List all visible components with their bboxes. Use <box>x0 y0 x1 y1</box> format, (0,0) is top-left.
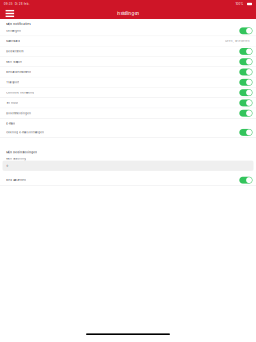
staticText: Instellingen <box>116 11 139 16</box>
button[interactable]: Bloemmeldingen <box>0 108 256 119</box>
staticText: Controle hervatend <box>6 91 34 94</box>
staticText: Nachtstand <box>6 39 20 43</box>
button[interactable]: Controle hervatend <box>0 88 256 98</box>
staticText: Mijn slaapje <box>6 60 22 63</box>
button[interactable]: Ontvangen <box>0 26 256 36</box>
staticText: 100% <box>235 2 243 6</box>
staticText: Mijn bedinstellingen <box>6 151 37 154</box>
button[interactable]: Nachtstand <box>0 36 256 46</box>
button[interactable]: Bedverstrem <box>0 46 256 57</box>
staticText: Mijn afsluiting <box>6 157 26 160</box>
staticText: Geen, selecteren <box>225 39 250 43</box>
staticText: 09:35 <box>4 2 13 6</box>
button[interactable]: Mijn slaapje <box>0 57 256 67</box>
staticText: Bedverstrem <box>6 50 23 53</box>
button[interactable]: Ook nog e-mails ontvangen <box>0 127 256 138</box>
staticText: Bloemmeldingen <box>6 112 31 115</box>
staticText: Mijn notificaties <box>6 22 30 26</box>
button[interactable]: Behandelmoment <box>0 67 256 77</box>
staticText: Transport <box>6 81 19 84</box>
button[interactable]: Transport <box>0 77 256 88</box>
button[interactable]: Bed aanzetten <box>0 175 256 186</box>
staticText: Behandelmoment <box>6 70 31 73</box>
staticText: Ook nog e-mails ontvangen <box>6 131 44 134</box>
staticText: E-mail <box>6 122 15 125</box>
staticText: Bed aanzetten <box>6 179 26 182</box>
staticText: 0 <box>6 164 8 167</box>
button[interactable]: Tel huur <box>0 98 256 108</box>
staticText: Tel huur <box>6 101 18 104</box>
staticText: Ontvangen <box>6 29 21 32</box>
button[interactable]: Menu <box>4 8 16 19</box>
staticText: Di 28 feb. <box>13 2 30 6</box>
